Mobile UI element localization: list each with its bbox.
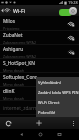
button[interactable]: S_HotSpot_KN [0, 59, 79, 73]
staticText: Mimo dosah [3, 82, 24, 87]
staticText: Pokročilé [38, 110, 56, 115]
button[interactable]: Ashigaru [0, 45, 79, 59]
staticText: Zabezpeceno WPA2 [3, 40, 36, 45]
button[interactable]: Milos [0, 17, 79, 31]
button[interactable]: Wi-Fi on/off [57, 5, 79, 16]
staticText: Zabezpeceno WPA2 [3, 54, 36, 59]
staticText: Zadání kódu WPS PIN [38, 90, 79, 95]
staticText: Pripojeno [3, 26, 20, 31]
button[interactable]: Add network [33, 117, 45, 129]
button[interactable]: Recents [52, 129, 66, 140]
button[interactable]: More options [67, 117, 79, 129]
button[interactable]: ZubaNet [0, 31, 79, 45]
staticText: Milos [3, 18, 16, 25]
staticText: internet_zdarma [3, 105, 41, 112]
button[interactable]: Home [33, 129, 47, 140]
button[interactable]: dlinK [0, 87, 79, 101]
staticText: ZubaNet [3, 32, 23, 39]
staticText: 19:28 [68, 0, 78, 5]
button[interactable]: Wi-Fi Direct [36, 97, 79, 107]
staticText: Mimo dosah [3, 68, 24, 73]
button[interactable]: internet_zdarma [0, 101, 79, 115]
staticText: Vyhledávání [38, 80, 61, 85]
staticText: Softuplex_Core [3, 74, 37, 81]
staticText: dlinK [3, 88, 15, 95]
button[interactable]: Back [14, 129, 28, 140]
button[interactable]: Zadání kódu WPS PIN [36, 87, 79, 97]
staticText: Wi-Fi Direct [38, 100, 60, 105]
staticText: S_HotSpot_KN [3, 60, 35, 67]
button[interactable]: Pokročilé [36, 107, 79, 117]
staticText: Wi-Fi [13, 7, 26, 14]
button[interactable]: Vyhledávání [36, 77, 79, 87]
staticText: Mimo dosah [3, 96, 24, 101]
button[interactable]: Scan [2, 117, 15, 129]
button[interactable]: Navigate up [0, 5, 28, 16]
button[interactable]: Softuplex_Core [0, 73, 79, 87]
staticText: Ashigaru [3, 46, 24, 53]
